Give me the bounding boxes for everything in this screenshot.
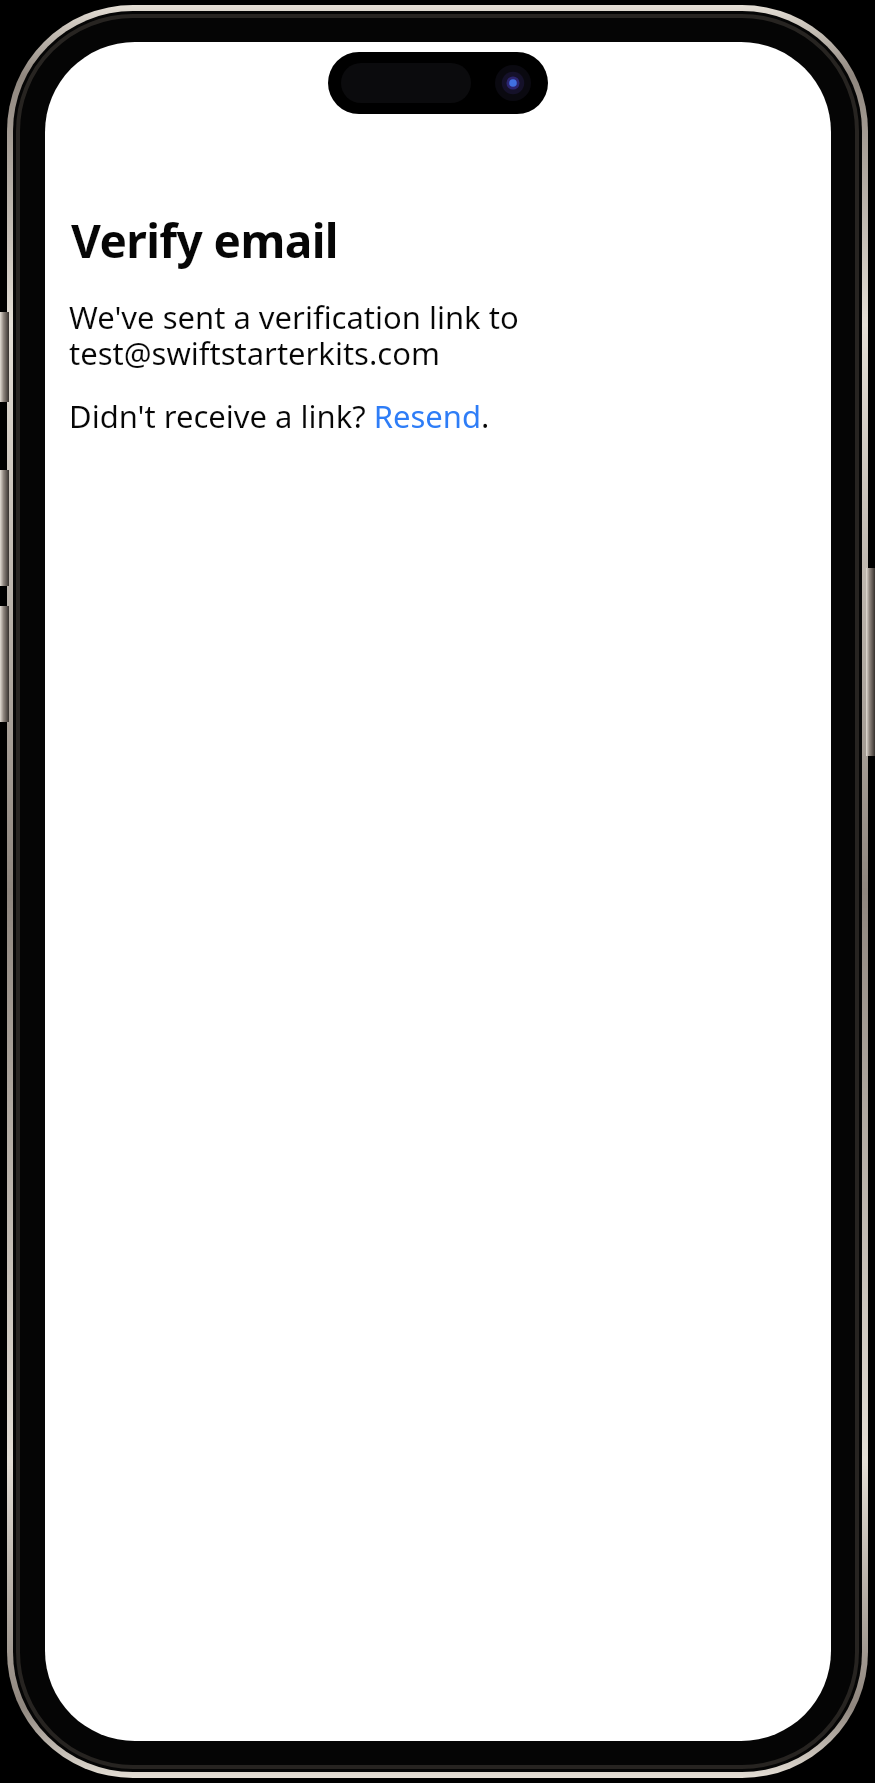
staticText: Verify email	[71, 209, 338, 272]
button[interactable]: Didn't receive a link? Resend.	[69, 395, 490, 437]
staticText: We've sent a verification link to test@s…	[69, 296, 519, 374]
other: Dynamic Island	[328, 52, 548, 114]
staticText: Didn't receive a link? Resend.	[69, 395, 490, 437]
